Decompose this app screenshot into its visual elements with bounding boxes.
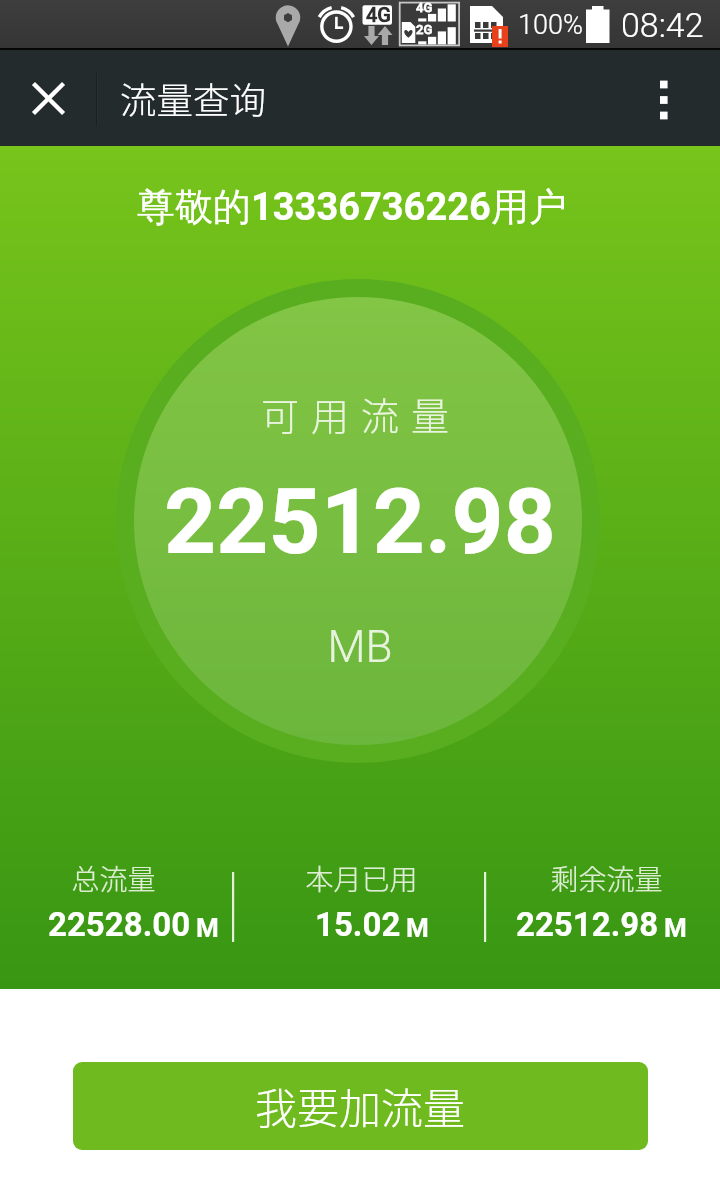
staticText: M — [664, 913, 687, 943]
staticText: 总流量 — [71, 858, 156, 899]
staticText: 15.02 — [315, 905, 401, 944]
staticText: 用户 — [491, 183, 567, 231]
staticText: 22528.00 — [48, 905, 191, 944]
staticText: MB — [0, 621, 720, 673]
staticText: 我要加流量 — [255, 1075, 466, 1136]
button[interactable]: 我要加流量 — [73, 1062, 648, 1150]
staticText: 4G — [366, 3, 391, 26]
staticText: M — [196, 913, 219, 943]
staticText: 100% — [518, 9, 583, 41]
staticText: 2G — [416, 22, 433, 37]
staticText: 22512.98 — [516, 905, 659, 944]
staticText: M — [406, 913, 429, 943]
staticText: 尊敬的 — [137, 183, 251, 231]
button[interactable]: More options — [626, 50, 702, 146]
staticText: 流量查询 — [120, 72, 266, 125]
staticText: 剩余流量 — [550, 858, 663, 899]
button[interactable]: Close — [0, 50, 96, 146]
staticText: 22512.98 — [0, 469, 720, 576]
staticText: 本月已用 — [305, 858, 418, 899]
staticText: 4G — [416, 0, 433, 15]
staticText: 可用流量 — [1, 386, 720, 441]
staticText: 13336736226 — [251, 185, 491, 230]
staticText: 08:42 — [621, 5, 704, 45]
